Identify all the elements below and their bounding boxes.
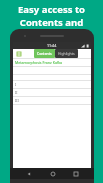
button[interactable]: Highlights (55, 49, 78, 58)
staticText: Metamorphosis Franz Kafka (15, 60, 63, 65)
staticText: 11:44 (47, 43, 57, 48)
button[interactable]: Home (48, 169, 57, 178)
button[interactable]: Contents (34, 49, 55, 58)
staticText: I (15, 82, 17, 87)
button[interactable]: Table of contents (15, 50, 22, 57)
staticText: Easy access to (18, 3, 85, 16)
button[interactable]: Recent apps (71, 169, 80, 178)
staticText: II (15, 90, 18, 95)
staticText: Contents (37, 51, 52, 56)
button[interactable]: III (13, 97, 91, 104)
staticText: Highlights (58, 51, 75, 56)
button[interactable]: Metamorphosis Franz Kafka (13, 59, 91, 66)
staticText: Contents and Highlights (0, 16, 103, 42)
button[interactable]: I (13, 81, 91, 88)
button[interactable]: II (13, 89, 91, 96)
staticText: III (15, 98, 19, 103)
button[interactable]: Back (24, 169, 33, 178)
